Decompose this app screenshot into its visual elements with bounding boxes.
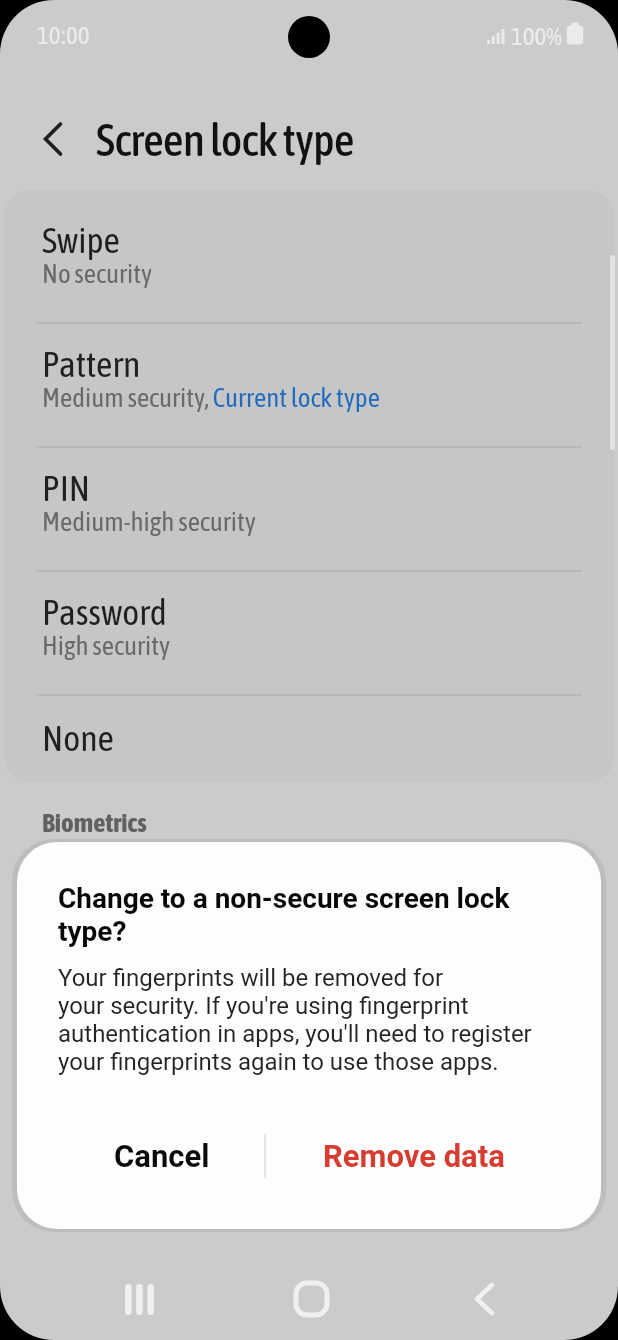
staticText: No security — [42, 258, 153, 289]
staticText: 10:00 — [37, 21, 90, 50]
staticText: Biometrics — [42, 807, 147, 838]
button[interactable]: Swipe — [4, 190, 614, 322]
button[interactable] — [464, 1272, 508, 1326]
staticText: Pattern — [42, 343, 141, 384]
staticText: Swipe — [42, 219, 120, 260]
button[interactable]: PIN — [4, 447, 614, 570]
button[interactable]: Cancel — [86, 1124, 238, 1188]
staticText: Medium security, Current lock type — [42, 382, 380, 413]
staticText: Remove data — [323, 1138, 505, 1174]
button[interactable] — [28, 110, 76, 168]
button[interactable]: None — [4, 695, 614, 782]
staticText: Screen lock type — [96, 114, 354, 166]
staticText: Cancel — [114, 1138, 210, 1174]
button[interactable] — [113, 1272, 165, 1326]
staticText: PIN — [42, 467, 91, 508]
button[interactable]: Remove data — [299, 1124, 529, 1188]
button[interactable]: Password — [4, 571, 614, 694]
staticText: Medium-high security — [42, 506, 256, 537]
staticText: Your fingerprints will be removed for yo… — [58, 964, 532, 1076]
staticText: None — [42, 717, 114, 758]
staticText: 100% — [511, 22, 562, 51]
staticText: High security — [42, 630, 171, 661]
button[interactable]: Pattern — [4, 323, 614, 446]
button[interactable] — [290, 1272, 334, 1322]
staticText: Change to a non-secure screen lock type? — [58, 882, 510, 948]
staticText: Password — [42, 591, 167, 632]
